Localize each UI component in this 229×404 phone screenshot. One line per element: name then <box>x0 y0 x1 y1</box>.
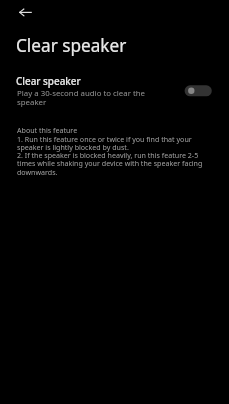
staticText: Play a 30-second audio to clear the <box>17 88 146 99</box>
staticText: Clear speaker <box>16 34 127 57</box>
staticText: times while shaking your device with the… <box>17 158 203 168</box>
staticText: downwards. <box>17 167 58 177</box>
staticText: About this feature <box>17 125 78 135</box>
staticText: speaker is lightly blocked by dust. <box>17 142 129 152</box>
button[interactable]: Back <box>5 0 45 32</box>
staticText: 2. If the speaker is blocked heavily, ru… <box>17 150 199 160</box>
staticText: Clear speaker <box>16 74 81 87</box>
staticText: speaker <box>17 97 47 108</box>
staticText: 1. Run this feature once or twice if you… <box>17 134 192 144</box>
button[interactable]: Clear speaker <box>0 68 229 112</box>
button[interactable]: Clear speaker, off <box>182 82 214 100</box>
